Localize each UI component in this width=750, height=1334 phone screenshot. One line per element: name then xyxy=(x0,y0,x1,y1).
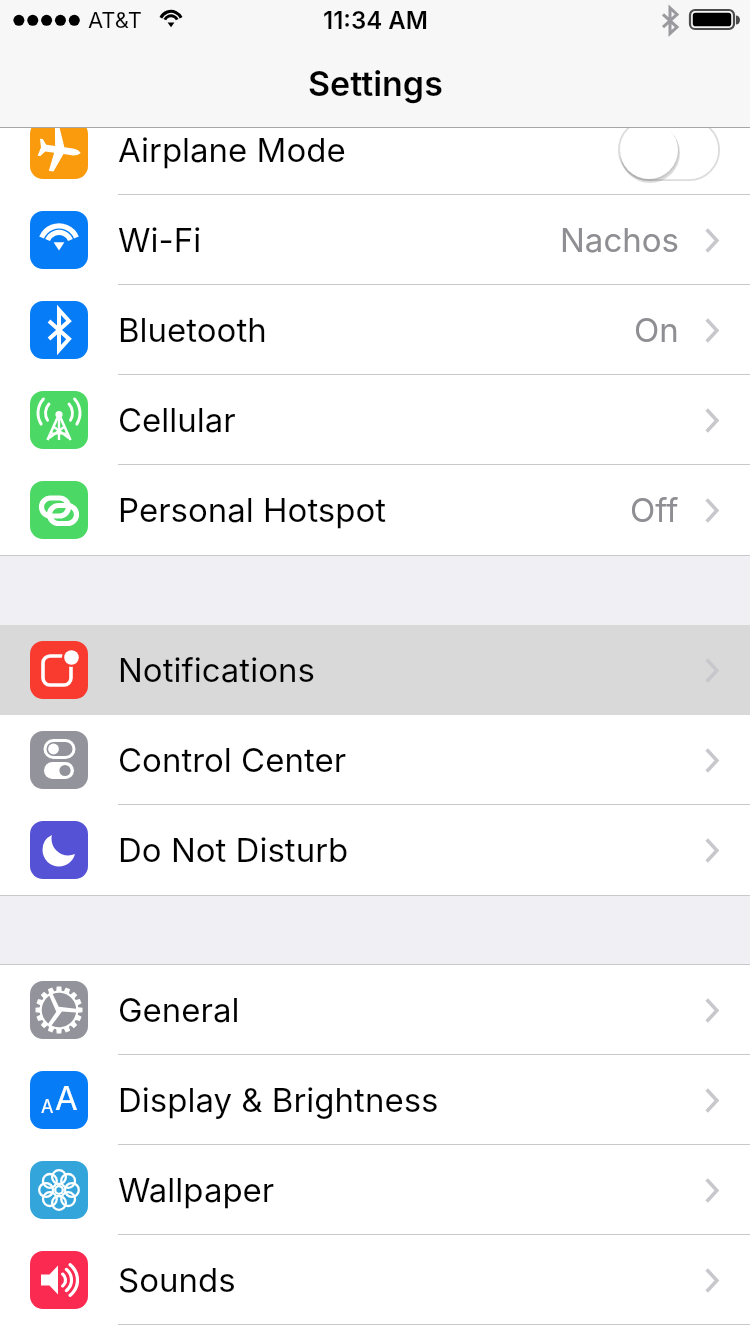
staticText: AT&T xyxy=(88,7,142,34)
staticText: General xyxy=(118,990,240,1030)
staticText: Settings xyxy=(308,63,443,104)
staticText: On xyxy=(634,310,679,350)
staticText: Notifications xyxy=(118,650,315,690)
staticText: Display & Brightness xyxy=(118,1080,439,1120)
button[interactable]: A xyxy=(0,1055,750,1145)
staticText: Wallpaper xyxy=(118,1170,275,1210)
button[interactable]: Airplane Mode toggle, off xyxy=(618,119,720,181)
button[interactable]: Notifications xyxy=(0,625,750,715)
staticText: Cellular xyxy=(118,400,236,440)
button[interactable]: Personal Hotspot xyxy=(0,465,750,555)
staticText: Do Not Disturb xyxy=(118,830,349,870)
staticText: Off xyxy=(630,490,679,530)
button[interactable]: Cellular xyxy=(0,375,750,465)
staticText: A xyxy=(55,1078,78,1118)
staticText: Personal Hotspot xyxy=(118,490,387,530)
staticText: A xyxy=(41,1096,54,1118)
button[interactable]: Control Center xyxy=(0,715,750,805)
staticText: Airplane Mode xyxy=(118,130,346,170)
button[interactable]: Wallpaper xyxy=(0,1145,750,1235)
button[interactable]: Airplane Mode xyxy=(0,105,750,195)
button[interactable]: Sounds xyxy=(0,1235,750,1325)
button[interactable]: Bluetooth xyxy=(0,285,750,375)
staticText: Bluetooth xyxy=(118,310,267,350)
staticText: Sounds xyxy=(118,1260,236,1300)
button[interactable]: Do Not Disturb xyxy=(0,805,750,895)
staticText: Control Center xyxy=(118,740,347,780)
staticText: Wi-Fi xyxy=(118,220,202,260)
button[interactable]: General xyxy=(0,965,750,1055)
button[interactable]: Wi-Fi xyxy=(0,195,750,285)
staticText: Nachos xyxy=(560,220,679,260)
staticText: 11:34 AM xyxy=(323,6,428,35)
